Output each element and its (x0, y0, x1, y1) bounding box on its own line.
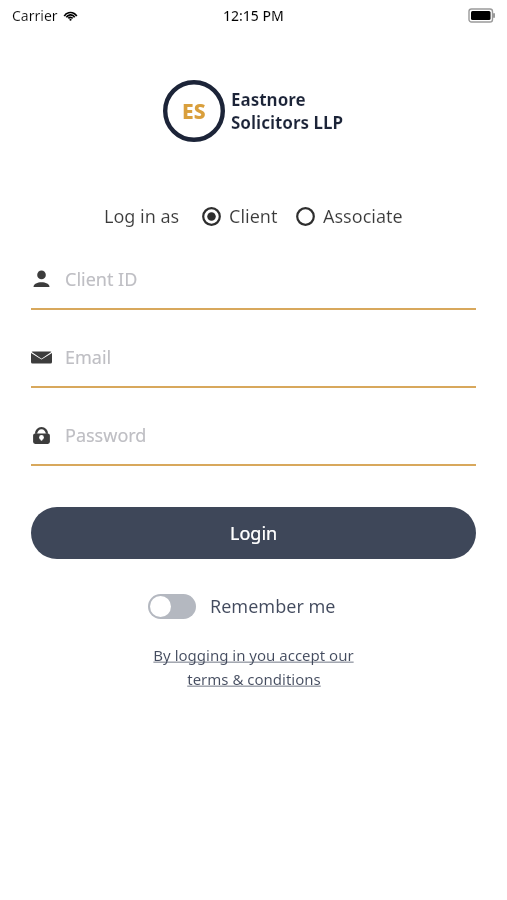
staticText: Log in as (104, 204, 180, 229)
other: Remember me toggle (148, 594, 196, 619)
staticText: Solicitors LLP (231, 111, 344, 134)
staticText: Client ID (65, 267, 138, 292)
button[interactable]: Login (31, 507, 476, 559)
button[interactable]: By logging in you accept our (0, 645, 507, 689)
staticText: ES (182, 97, 206, 126)
staticText: Client (229, 204, 278, 229)
staticText: Email (65, 345, 112, 370)
staticText: By logging in you accept our (153, 645, 354, 665)
button[interactable]: Client (202, 204, 278, 229)
button[interactable]: Client ID (31, 267, 476, 310)
button[interactable]: Password (31, 423, 476, 466)
staticText: Associate (323, 204, 403, 229)
button[interactable]: Associate (296, 204, 403, 229)
staticText: Login (230, 521, 278, 546)
staticText: terms & conditions (187, 669, 321, 689)
button[interactable]: Remember me toggle (148, 594, 336, 619)
staticText: Remember me (210, 594, 336, 619)
button[interactable]: Email (31, 345, 476, 388)
staticText: Carrier (12, 6, 58, 25)
staticText: 12:15 PM (223, 6, 284, 25)
staticText: Eastnore (231, 88, 306, 111)
staticText: Password (65, 423, 147, 448)
